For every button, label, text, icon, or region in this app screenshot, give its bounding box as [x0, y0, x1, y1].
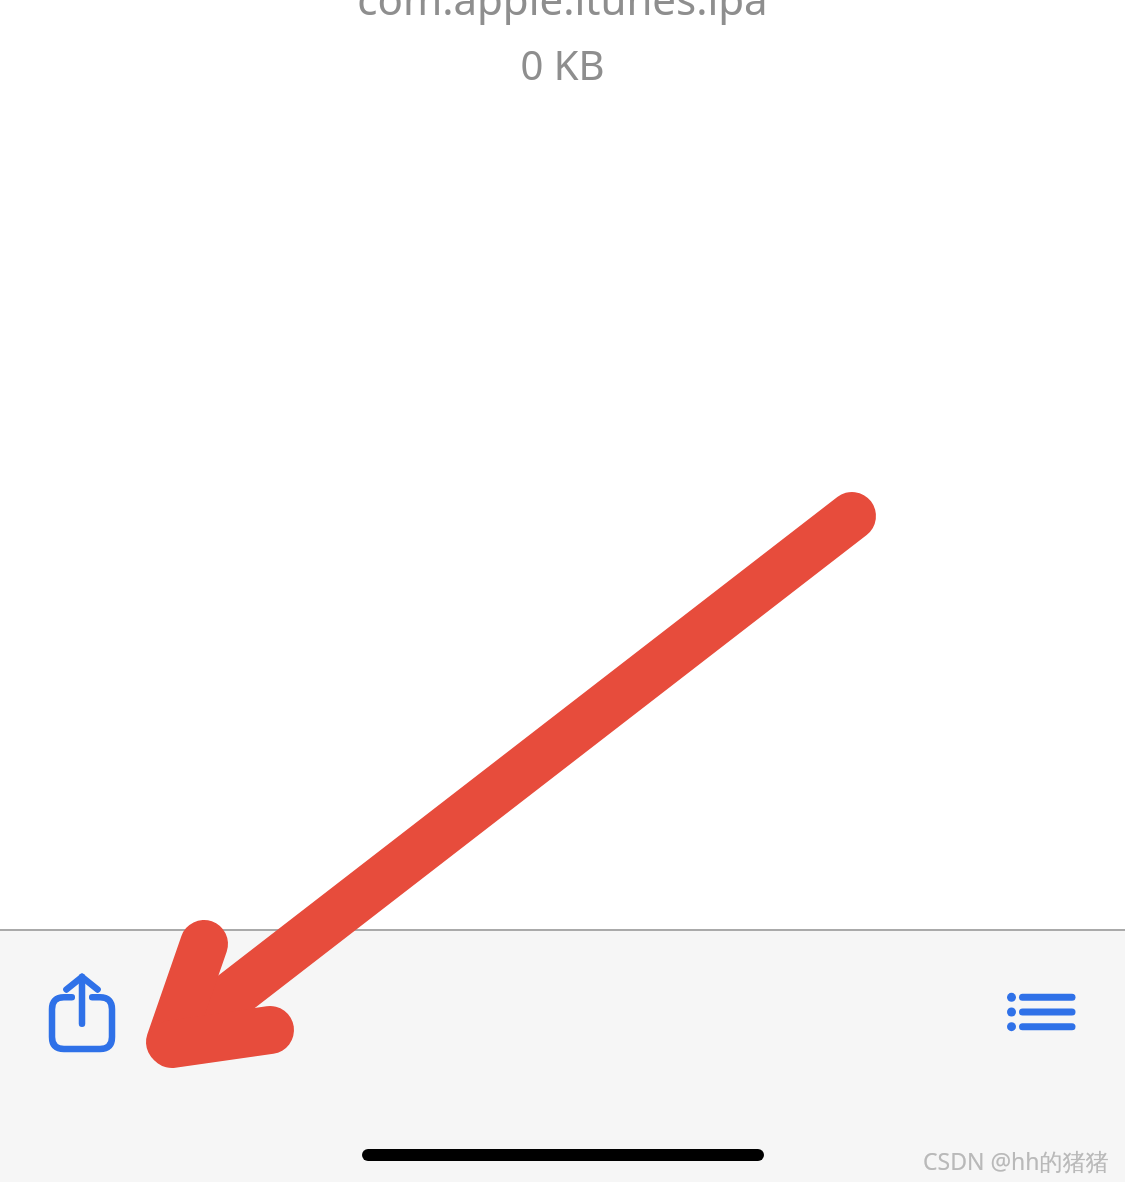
staticText: CSDN @hh的猪猪: [923, 1145, 1109, 1176]
staticText: com.apple.itunes.ipa: [0, 0, 1125, 27]
staticText: 0 KB: [0, 37, 1125, 91]
button[interactable]: List view: [985, 962, 1093, 1062]
button[interactable]: Share: [30, 960, 134, 1064]
